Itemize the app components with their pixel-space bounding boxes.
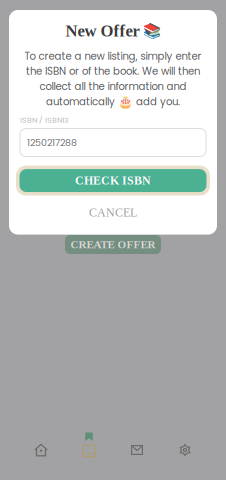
staticText: 🎂 — [118, 95, 133, 108]
button[interactable]: Offers — [65, 428, 113, 472]
staticText: collect all the information and — [39, 79, 186, 94]
staticText: the ISBN or of the book. We will then — [26, 64, 200, 78]
button[interactable]: Messages — [113, 428, 161, 472]
staticText: CHECK ISBN — [75, 174, 151, 187]
staticText: ISBN / ISBN13 — [20, 115, 69, 125]
staticText: 1250217288 — [27, 136, 77, 149]
button[interactable]: CREATE OFFER — [65, 235, 161, 254]
staticText: To create a new listing, simply enter — [24, 49, 201, 63]
button[interactable]: CHECK ISBN — [16, 166, 210, 196]
staticText: CREATE OFFER — [70, 238, 155, 251]
staticText: 📚 — [142, 23, 160, 39]
button[interactable]: Home — [17, 428, 65, 472]
staticText: CANCEL — [89, 206, 137, 219]
staticText: New Offer — [65, 22, 139, 40]
staticText: automatically — [46, 95, 115, 109]
staticText: add you. — [136, 95, 180, 109]
button[interactable]: CANCEL — [9, 203, 217, 223]
button[interactable]: Settings — [161, 428, 209, 472]
